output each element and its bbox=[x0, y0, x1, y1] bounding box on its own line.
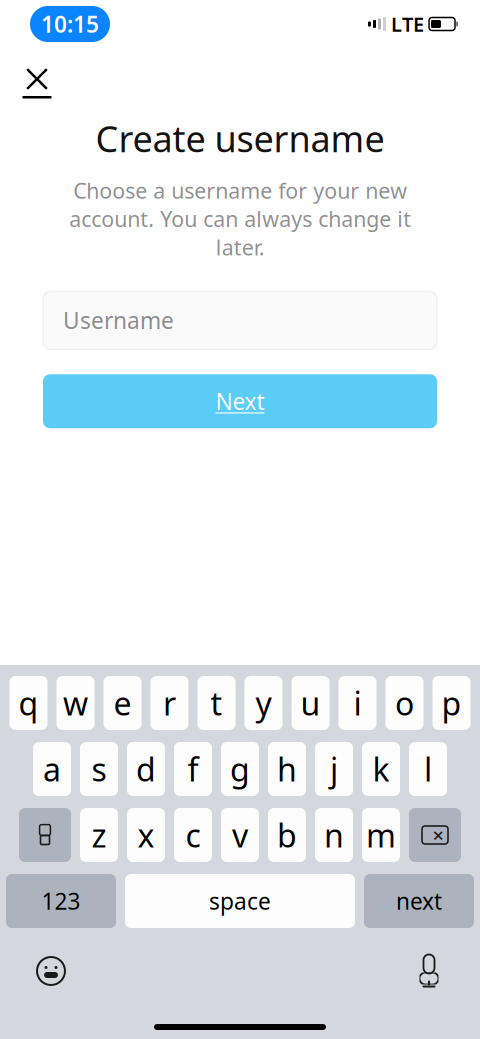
button[interactable]: i bbox=[338, 676, 376, 730]
button[interactable]: space bbox=[125, 874, 355, 928]
staticText: w bbox=[63, 682, 88, 724]
staticText: p bbox=[441, 682, 461, 724]
staticText: y bbox=[255, 682, 271, 724]
button[interactable]: t bbox=[197, 676, 235, 730]
staticText: t bbox=[210, 682, 222, 724]
button[interactable]: w bbox=[56, 676, 94, 730]
button[interactable]: d bbox=[127, 742, 165, 796]
button[interactable]: x bbox=[127, 808, 165, 862]
button[interactable]: Emoji bbox=[26, 946, 76, 996]
button[interactable]: m bbox=[362, 808, 400, 862]
staticText: h bbox=[277, 748, 297, 790]
staticText: 10:15 bbox=[41, 9, 99, 39]
button[interactable]: Shift bbox=[19, 808, 71, 862]
staticText: m bbox=[366, 814, 396, 856]
staticText: Choose a username for your new account. … bbox=[69, 176, 411, 261]
button[interactable]: l bbox=[409, 742, 447, 796]
staticText: b bbox=[277, 814, 297, 856]
button[interactable]: o bbox=[385, 676, 423, 730]
button[interactable]: s bbox=[80, 742, 118, 796]
button[interactable]: z bbox=[80, 808, 118, 862]
staticText: q bbox=[18, 682, 38, 724]
button[interactable]: a bbox=[33, 742, 71, 796]
button[interactable]: q bbox=[9, 676, 47, 730]
staticText: k bbox=[372, 748, 389, 790]
button[interactable]: h bbox=[268, 742, 306, 796]
staticText: l bbox=[424, 748, 432, 790]
button[interactable]: u bbox=[291, 676, 329, 730]
button[interactable]: j bbox=[315, 742, 353, 796]
staticText: c bbox=[185, 814, 200, 856]
staticText: u bbox=[300, 682, 320, 724]
button[interactable]: y bbox=[244, 676, 282, 730]
button[interactable]: p bbox=[432, 676, 470, 730]
button[interactable]: c bbox=[174, 808, 212, 862]
staticText: Create username bbox=[95, 114, 384, 162]
staticText: z bbox=[91, 814, 106, 856]
staticText: o bbox=[395, 682, 414, 724]
staticText: x bbox=[137, 814, 154, 856]
button[interactable]: e bbox=[103, 676, 141, 730]
button[interactable]: Delete bbox=[409, 808, 461, 862]
button[interactable]: Dictate bbox=[404, 944, 454, 998]
staticText: g bbox=[230, 748, 250, 790]
button[interactable]: Next bbox=[43, 374, 437, 428]
staticText: j bbox=[330, 748, 338, 790]
button[interactable]: n bbox=[315, 808, 353, 862]
button[interactable]: b bbox=[268, 808, 306, 862]
staticText: 123 bbox=[41, 886, 80, 916]
button[interactable]: r bbox=[150, 676, 188, 730]
staticText: LTE bbox=[391, 11, 424, 37]
staticText: s bbox=[91, 748, 106, 790]
staticText: r bbox=[163, 682, 176, 724]
staticText: Next bbox=[215, 386, 264, 416]
staticText: × bbox=[432, 822, 443, 848]
staticText: n bbox=[324, 814, 344, 856]
staticText: e bbox=[113, 682, 131, 724]
button[interactable]: v bbox=[221, 808, 259, 862]
button[interactable]: next bbox=[364, 874, 474, 928]
button[interactable]: f bbox=[174, 742, 212, 796]
staticText: d bbox=[136, 748, 156, 790]
staticText: f bbox=[187, 748, 198, 790]
button[interactable]: 123 bbox=[6, 874, 116, 928]
staticText: a bbox=[43, 748, 61, 790]
staticText: next bbox=[396, 886, 442, 916]
button[interactable]: k bbox=[362, 742, 400, 796]
staticText: v bbox=[232, 814, 248, 856]
button[interactable]: g bbox=[221, 742, 259, 796]
staticText: i bbox=[353, 682, 361, 724]
staticText: Username bbox=[63, 305, 174, 335]
staticText: space bbox=[209, 886, 271, 916]
button[interactable]: Close bbox=[14, 58, 60, 104]
